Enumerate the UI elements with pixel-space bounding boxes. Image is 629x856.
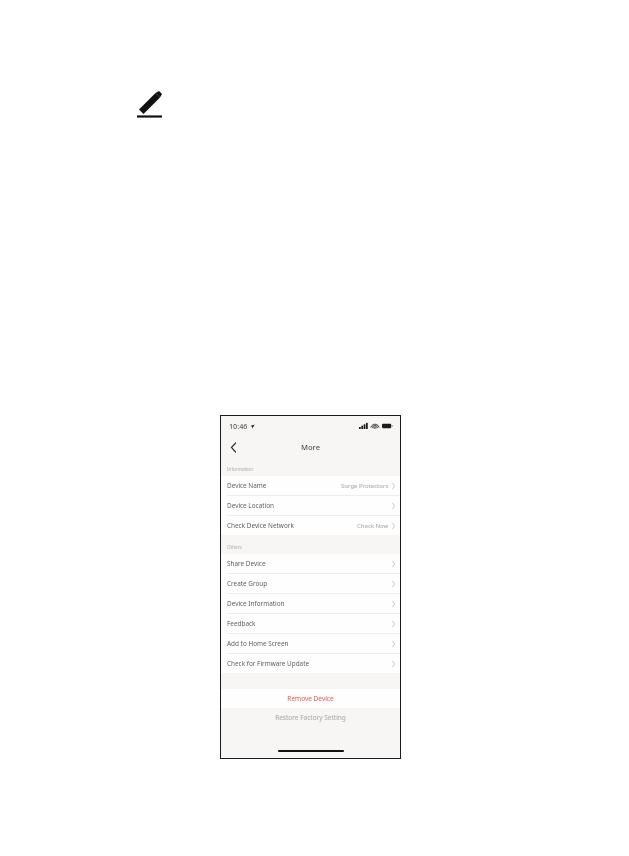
- staticText: Check for Firmware Update: [227, 659, 310, 668]
- staticText: Device Location: [227, 501, 275, 510]
- staticText: Add to Home Screen: [227, 639, 289, 648]
- button[interactable]: Check for Firmware Update: [221, 654, 400, 673]
- staticText: Device Name: [227, 481, 267, 490]
- staticText: Device Information: [227, 599, 285, 608]
- button[interactable]: Device Information: [221, 594, 400, 614]
- button[interactable]: Device Location: [221, 496, 400, 516]
- staticText: Check Now: [357, 522, 389, 530]
- button[interactable]: Create Group: [221, 574, 400, 594]
- staticText: More: [301, 442, 321, 452]
- button[interactable]: Share Device: [221, 554, 400, 574]
- staticText: Information: [227, 466, 253, 472]
- staticText: Surge Protectors: [341, 482, 389, 490]
- staticText: Feedback: [227, 619, 256, 628]
- staticText: Others: [227, 544, 242, 550]
- staticText: Remove Device: [287, 694, 334, 703]
- button[interactable]: Add to Home Screen: [221, 634, 400, 654]
- button[interactable]: Device Name: [221, 476, 400, 496]
- staticText: Check Device Network: [227, 521, 294, 530]
- button[interactable]: Remove Device: [221, 689, 400, 708]
- staticText: Create Group: [227, 579, 268, 588]
- button[interactable]: Feedback: [221, 614, 400, 634]
- button[interactable]: Edit: [134, 87, 170, 119]
- button[interactable]: Check Device Network: [221, 516, 400, 535]
- staticText: 10:46: [229, 421, 248, 431]
- staticText: Restore Factory Setting: [275, 713, 346, 722]
- button[interactable]: Restore Factory Setting: [221, 708, 400, 727]
- staticText: Share Device: [227, 559, 266, 568]
- button[interactable]: Back: [225, 439, 241, 455]
